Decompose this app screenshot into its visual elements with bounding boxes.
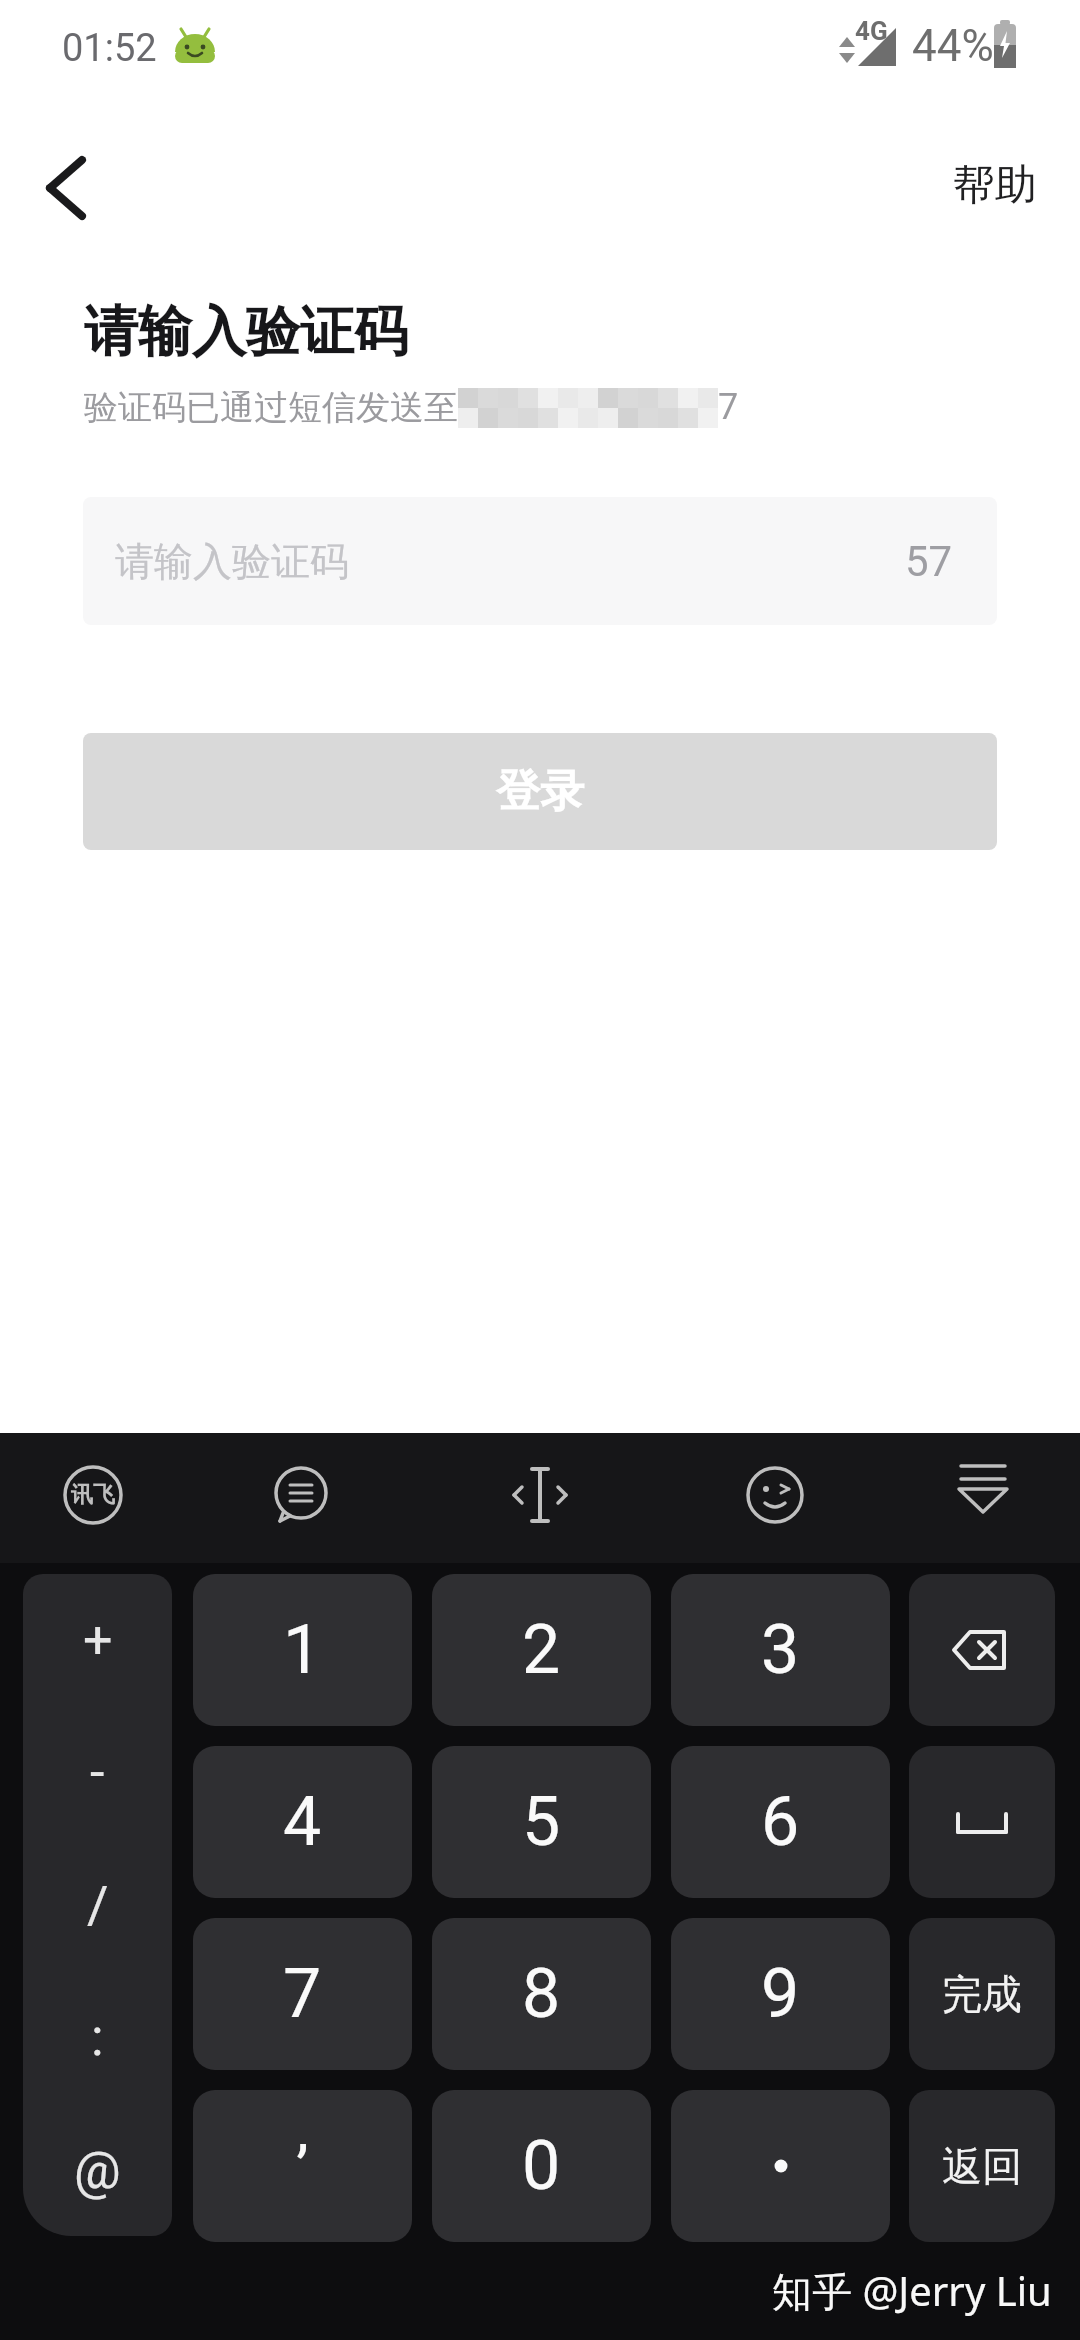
button[interactable] bbox=[743, 1463, 807, 1527]
button[interactable]: 8 bbox=[432, 1918, 651, 2070]
button[interactable] bbox=[508, 1463, 572, 1527]
button[interactable]: + bbox=[23, 1574, 172, 2236]
staticText: 01:52 bbox=[62, 26, 157, 71]
staticText: - bbox=[90, 1742, 105, 1803]
button[interactable]: 1 bbox=[193, 1574, 412, 1726]
staticText: 4 bbox=[283, 1782, 322, 1862]
staticText: 5 bbox=[522, 1782, 561, 1862]
button[interactable] bbox=[909, 1746, 1055, 1898]
staticText: 请输入验证码 bbox=[84, 298, 408, 366]
staticText: 44% bbox=[912, 20, 994, 72]
staticText: 讯飞 bbox=[71, 1481, 115, 1509]
button[interactable]: 讯飞 bbox=[61, 1463, 125, 1527]
staticText: 帮助 bbox=[953, 159, 1037, 212]
staticText: 登录 bbox=[496, 764, 584, 819]
staticText: 请输入验证码 bbox=[115, 537, 349, 586]
staticText: 0 bbox=[522, 2126, 561, 2206]
button[interactable]: 4 bbox=[193, 1746, 412, 1898]
button[interactable]: 6 bbox=[671, 1746, 890, 1898]
staticText: 知乎 @Jerry Liu bbox=[772, 2263, 1052, 2318]
button[interactable]: 登录 bbox=[83, 733, 997, 850]
staticText: @ bbox=[74, 2140, 121, 2201]
button[interactable]: 7 bbox=[193, 1918, 412, 2070]
button[interactable]: 9 bbox=[671, 1918, 890, 2070]
button[interactable] bbox=[909, 1574, 1055, 1726]
staticText: 2 bbox=[522, 1610, 561, 1690]
button[interactable] bbox=[30, 148, 106, 224]
staticText: 完成 bbox=[942, 1969, 1022, 2019]
staticText: 返回 bbox=[942, 2141, 1022, 2191]
staticText: 7 bbox=[283, 1954, 322, 2034]
button[interactable]: 5 bbox=[432, 1746, 651, 1898]
button[interactable]: 帮助 bbox=[930, 150, 1060, 220]
staticText: 验证码已通过短信发送至 bbox=[84, 386, 458, 429]
staticText: 3 bbox=[761, 1610, 800, 1690]
button[interactable]: ’ bbox=[193, 2090, 412, 2242]
staticText: 4G bbox=[855, 16, 888, 46]
button[interactable]: 2 bbox=[432, 1574, 651, 1726]
button[interactable] bbox=[951, 1460, 1015, 1524]
button[interactable]: 完成 bbox=[909, 1918, 1055, 2070]
button[interactable]: 0 bbox=[432, 2090, 651, 2242]
button[interactable] bbox=[268, 1463, 332, 1527]
staticText: 57 bbox=[905, 537, 953, 586]
button[interactable]: 返回 bbox=[909, 2090, 1055, 2242]
staticText: 1 bbox=[283, 1610, 322, 1690]
button[interactable]: 3 bbox=[671, 1574, 890, 1726]
button[interactable]: 请输入验证码 bbox=[83, 497, 997, 625]
staticText: / bbox=[87, 1875, 109, 1936]
button[interactable] bbox=[671, 2090, 890, 2242]
staticText: + bbox=[83, 1610, 113, 1671]
staticText: ’ bbox=[296, 2132, 309, 2205]
staticText: 6 bbox=[761, 1782, 800, 1862]
staticText: : bbox=[91, 2007, 104, 2068]
staticText: 9 bbox=[761, 1954, 800, 2034]
staticText: 8 bbox=[522, 1954, 561, 2034]
staticText: 7 bbox=[718, 386, 739, 428]
